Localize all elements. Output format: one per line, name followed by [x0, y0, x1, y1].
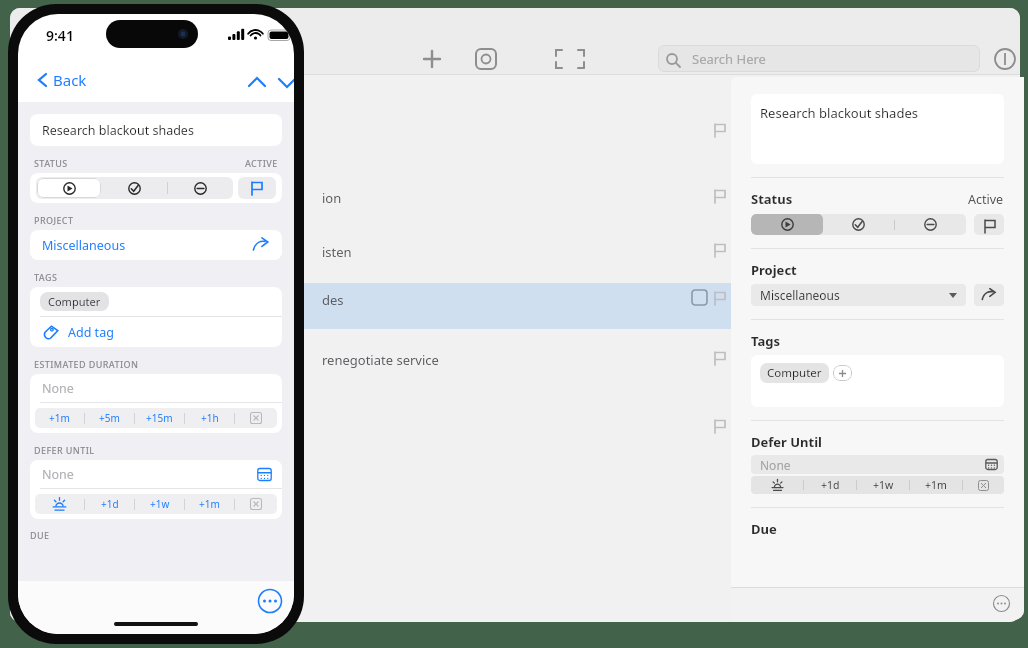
button[interactable]: Clear	[235, 408, 277, 428]
button[interactable]: Add tag	[833, 365, 852, 381]
button[interactable]: Clear	[963, 476, 1004, 494]
button[interactable]: Research blackout shades	[30, 114, 282, 146]
button[interactable]: Back	[32, 68, 91, 92]
button[interactable]: Previous item	[246, 72, 268, 94]
staticText: des	[322, 291, 344, 309]
staticText: Status	[751, 190, 793, 208]
staticText: Tags	[751, 332, 780, 350]
button[interactable]: Flag	[238, 177, 276, 199]
button[interactable]: Tomorrow	[35, 494, 84, 514]
staticText: Search Here	[692, 50, 766, 68]
staticText: +1d	[821, 478, 840, 492]
button[interactable]: +1d	[85, 494, 134, 514]
staticText: Miscellaneous	[42, 237, 126, 254]
button[interactable]: +1h	[185, 408, 234, 428]
staticText: DEFER UNTIL	[34, 444, 95, 456]
button[interactable]: Computer	[40, 292, 109, 311]
staticText: None	[760, 457, 791, 473]
other: Info	[994, 48, 1016, 70]
staticText: TAGS	[34, 271, 58, 283]
staticText: Active	[968, 191, 1004, 208]
staticText: Research blackout shades	[42, 122, 194, 139]
button[interactable]: +1d	[804, 476, 856, 494]
button[interactable]: Completed	[823, 214, 894, 235]
staticText: +1w	[150, 497, 170, 511]
button[interactable]: None	[30, 374, 282, 402]
button[interactable]: More options	[258, 589, 282, 613]
button[interactable]: Research blackout shades	[751, 94, 1004, 164]
staticText: Due	[751, 520, 777, 538]
staticText: +15m	[146, 411, 173, 425]
staticText: Add tag	[68, 324, 114, 341]
button[interactable]: Add tag	[30, 317, 282, 347]
staticText: +1w	[873, 478, 894, 492]
button[interactable]: Dropped	[895, 214, 966, 235]
staticText: isten	[322, 243, 352, 261]
button[interactable]: +5m	[85, 408, 134, 428]
staticText: Research blackout shades	[760, 104, 918, 122]
staticText: Project	[751, 261, 797, 279]
other: Pick date	[257, 467, 272, 482]
staticText: +1m	[925, 478, 947, 492]
button[interactable]: Search Here	[658, 45, 980, 72]
button[interactable]: Go to project	[974, 284, 1004, 306]
staticText: 9:41	[46, 26, 74, 45]
staticText: ACTIVE	[245, 157, 278, 169]
staticText: None	[42, 380, 74, 397]
staticText: renegotiate service	[322, 351, 439, 369]
staticText: Miscellaneous	[760, 287, 840, 303]
staticText: +1h	[201, 411, 219, 425]
button[interactable]: +1m	[35, 408, 84, 428]
staticText: ESTIMATED DURATION	[34, 358, 139, 370]
button[interactable]: Next item	[276, 72, 294, 94]
button[interactable]: Miscellaneous	[751, 284, 966, 306]
button[interactable]: Tomorrow	[751, 476, 803, 494]
staticText: +1m	[49, 411, 70, 425]
staticText: +1m	[199, 497, 220, 511]
staticText: DUE	[30, 529, 50, 541]
staticText: Computer	[48, 294, 101, 309]
staticText: Defer Until	[751, 433, 822, 451]
button[interactable]: +1m	[185, 494, 234, 514]
button[interactable]: +1w	[135, 494, 184, 514]
other: Pick date	[985, 458, 998, 471]
button[interactable]: None	[751, 455, 1004, 474]
staticText: STATUS	[34, 157, 68, 169]
staticText: Computer	[767, 365, 822, 381]
button[interactable]: +1w	[857, 476, 909, 494]
button[interactable]: Completed	[102, 177, 167, 199]
button[interactable]: Miscellaneous	[30, 230, 282, 260]
button[interactable]: Computer	[760, 363, 829, 383]
staticText: ion	[322, 189, 342, 207]
button[interactable]: More options	[993, 595, 1010, 612]
staticText: None	[42, 466, 74, 483]
staticText: +5m	[99, 411, 120, 425]
staticText: PROJECT	[34, 214, 74, 226]
button[interactable]: Active	[751, 214, 823, 235]
button[interactable]: Active	[37, 178, 101, 198]
staticText: +1d	[101, 497, 119, 511]
button[interactable]: Clear	[235, 494, 277, 514]
button[interactable]: +15m	[135, 408, 184, 428]
button[interactable]: +1m	[910, 476, 962, 494]
button[interactable]: Flag	[974, 214, 1004, 235]
button[interactable]: Dropped	[168, 177, 233, 199]
staticText: Back	[53, 70, 87, 90]
button[interactable]: None	[30, 460, 282, 488]
